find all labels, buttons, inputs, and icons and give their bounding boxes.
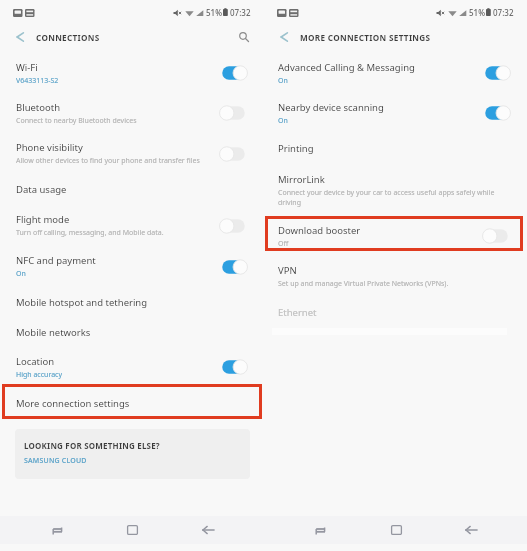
staticText: LOOKING FOR SOMETHING ELSE? <box>24 440 160 451</box>
button[interactable]: Search <box>224 24 264 50</box>
button[interactable]: Mobile hotspot and tethering <box>0 287 264 317</box>
button[interactable]: Navigate up <box>264 24 302 50</box>
staticText: On <box>278 76 288 86</box>
staticText: Mobile hotspot and tethering <box>16 296 148 309</box>
staticText: Allow other devices to find your phone a… <box>16 156 200 166</box>
button[interactable]: MirrorLink <box>264 164 527 216</box>
button[interactable]: Back <box>452 516 490 544</box>
staticText: On <box>16 269 26 279</box>
staticText: Mobile networks <box>16 326 91 339</box>
staticText: Off <box>278 239 289 249</box>
staticText: MirrorLink <box>278 173 325 186</box>
staticText: CONNECTIONS <box>36 32 100 43</box>
staticText: 07:32 <box>230 7 251 18</box>
button[interactable]: Download booster <box>264 216 527 256</box>
staticText: Download booster <box>278 224 361 237</box>
button[interactable]: Download booster switch <box>480 221 513 251</box>
staticText: Printing <box>278 142 314 155</box>
staticText: Nearby device scanning <box>278 101 384 114</box>
staticText: 07:32 <box>493 7 514 18</box>
staticText: VPN <box>278 264 297 277</box>
staticText: More connection settings <box>16 397 130 410</box>
staticText: 51% <box>206 7 222 18</box>
button[interactable]: Bluetooth <box>0 93 264 133</box>
staticText: Set up and manage Virtual Private Networ… <box>278 279 449 289</box>
button[interactable]: Nearby device scanning switch <box>480 98 513 128</box>
button[interactable]: Ethernet <box>264 296 527 328</box>
staticText: On <box>278 116 288 126</box>
staticText: Wi-Fi <box>16 61 38 74</box>
staticText: Flight mode <box>16 213 70 226</box>
button[interactable]: Home <box>113 516 151 544</box>
button[interactable]: Mobile networks <box>0 317 264 348</box>
button[interactable]: Location switch <box>217 352 250 382</box>
staticText: Location <box>16 355 55 368</box>
button[interactable]: Navigate up <box>0 24 38 50</box>
staticText: Connect to nearby Bluetooth devices <box>16 116 137 126</box>
button[interactable]: Wi-Fi switch <box>217 58 250 88</box>
staticText: High accuracy <box>16 370 63 380</box>
button[interactable]: Nearby device scanning <box>264 93 527 133</box>
button[interactable]: Recents <box>301 516 339 544</box>
button[interactable]: Home <box>377 516 415 544</box>
staticText: driving <box>278 198 301 208</box>
staticText: 51% <box>469 7 485 18</box>
button[interactable]: NFC and payment <box>0 246 264 287</box>
button[interactable]: NFC and payment switch <box>217 252 250 282</box>
staticText: Turn off calling, messaging, and Mobile … <box>16 228 164 238</box>
staticText: Phone visibility <box>16 141 83 154</box>
staticText: V6433113-S2 <box>16 76 59 86</box>
button[interactable]: Data usage <box>0 174 264 205</box>
staticText: MORE CONNECTION SETTINGS <box>300 32 431 43</box>
staticText: Data usage <box>16 183 67 196</box>
staticText: NFC and payment <box>16 254 96 267</box>
button[interactable]: Advanced Calling & Messaging switch <box>480 58 513 88</box>
button[interactable]: Flight mode switch <box>217 211 250 241</box>
button[interactable]: Wi-Fi <box>0 53 264 93</box>
button[interactable]: LOOKING FOR SOMETHING ELSE? <box>15 429 250 479</box>
button[interactable]: Back <box>189 516 227 544</box>
button[interactable]: Bluetooth switch <box>217 98 250 128</box>
staticText: Ethernet <box>278 306 317 319</box>
button[interactable]: Phone visibility switch <box>217 139 250 169</box>
staticText: SAMSUNG CLOUD <box>24 456 87 466</box>
button[interactable]: VPN <box>264 256 527 296</box>
button[interactable]: Flight mode <box>0 205 264 246</box>
button[interactable]: Location <box>0 348 264 386</box>
button[interactable]: Recents <box>38 516 76 544</box>
button[interactable]: Advanced Calling & Messaging <box>264 53 527 93</box>
staticText: Advanced Calling & Messaging <box>278 61 415 74</box>
button[interactable]: Printing <box>264 133 527 164</box>
staticText: Connect your device by your car to acces… <box>278 188 495 198</box>
button[interactable]: More connection settings <box>0 386 264 420</box>
button[interactable]: Phone visibility <box>0 133 264 174</box>
staticText: Bluetooth <box>16 101 61 114</box>
